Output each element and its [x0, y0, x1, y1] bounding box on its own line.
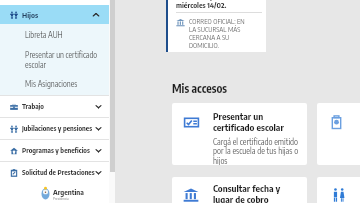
- staticText: Libreta AUH: [25, 30, 63, 40]
- staticText: Consultar fecha y lugar de cobro: [213, 182, 281, 203]
- staticText: Jubilaciones y pensiones: [22, 124, 93, 133]
- button[interactable]: [317, 177, 360, 203]
- staticText: Cargá el certificado emitido por la escu…: [213, 136, 305, 165]
- staticText: CORREO OFICIAL: EN LA SUCURSAL MÁS CERCA…: [189, 17, 245, 49]
- staticText: Presentar un certificado escolar: [25, 50, 103, 70]
- staticText: Presentar un certificado escolar: [213, 110, 284, 133]
- button[interactable]: Presentar un certificado escolar: [172, 103, 307, 165]
- staticText: Programas y beneficios: [22, 146, 90, 155]
- staticText: Mis accesos: [172, 81, 227, 95]
- staticText: Solicitud de Prestaciones: [22, 168, 95, 177]
- button[interactable]: Hijos: [0, 5, 109, 24]
- button[interactable]: Programas y beneficios: [0, 140, 109, 161]
- button[interactable]: [317, 103, 360, 165]
- button[interactable]: Mis Asignaciones: [0, 73, 109, 95]
- button[interactable]: Presentar un certificado escolar: [0, 46, 109, 73]
- staticText: Presidencia: [53, 196, 69, 200]
- button[interactable]: Libreta AUH: [0, 24, 109, 46]
- button[interactable]: Consultar fecha y lugar de cobro: [172, 177, 307, 203]
- staticText: Argentina: [53, 187, 84, 196]
- button[interactable]: Jubilaciones y pensiones: [0, 118, 109, 139]
- button[interactable]: Trabajo: [0, 96, 109, 117]
- staticText: Trabajo: [22, 102, 44, 111]
- staticText: Hijos: [22, 10, 39, 20]
- staticText: miércoles 14/02.: [176, 0, 227, 9]
- staticText: Mis Asignaciones: [25, 79, 78, 89]
- button[interactable]: Solicitud de Prestaciones: [0, 162, 109, 183]
